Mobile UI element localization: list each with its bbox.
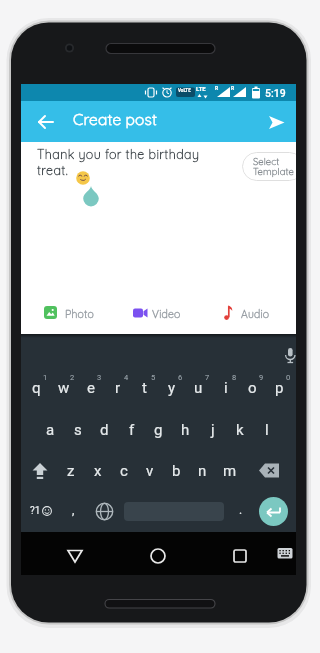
button[interactable]: q (23, 374, 50, 402)
button[interactable] (258, 462, 281, 480)
staticText: v (146, 462, 154, 480)
button[interactable]: z (57, 457, 84, 485)
staticText: LTE (196, 85, 206, 92)
button[interactable]: Video (128, 301, 188, 325)
staticText: a (46, 421, 55, 439)
staticText: R (215, 85, 219, 91)
staticText: 1 (43, 373, 48, 382)
button[interactable] (276, 544, 294, 562)
button[interactable]: Photo (39, 301, 105, 325)
button[interactable] (95, 502, 114, 521)
button[interactable]: n (189, 457, 216, 485)
button[interactable]: d (91, 416, 118, 444)
staticText: r (115, 379, 121, 397)
staticText: 5 (151, 373, 156, 382)
button[interactable]: k (226, 416, 253, 444)
staticText: 7 (205, 373, 210, 382)
staticText: 9 (259, 373, 264, 382)
staticText: 4 (124, 373, 129, 382)
staticText: 3 (97, 373, 102, 382)
staticText: Audio (241, 307, 270, 320)
staticText: ?1 (30, 505, 41, 517)
staticText: y (168, 379, 176, 397)
staticText: q (32, 379, 41, 397)
staticText: 2 (70, 373, 75, 382)
button[interactable]: h (172, 416, 199, 444)
button[interactable]: i (212, 374, 239, 402)
button[interactable] (259, 497, 288, 526)
button[interactable] (226, 541, 254, 569)
staticText: b (172, 462, 181, 480)
staticText: l (265, 421, 269, 439)
staticText: o (248, 379, 257, 397)
button[interactable]: x (84, 457, 111, 485)
button[interactable]: w (50, 374, 77, 402)
staticText: Photo (65, 307, 94, 320)
staticText: Select (253, 155, 280, 167)
staticText: 5:19 (265, 87, 286, 99)
staticText: Thank you for the birthday (37, 146, 200, 162)
staticText: 8 (232, 373, 237, 382)
button[interactable]: f (118, 416, 145, 444)
button[interactable]: u (185, 374, 212, 402)
staticText: p (275, 379, 284, 397)
button[interactable]: e (77, 374, 104, 402)
staticText: 6 (178, 373, 183, 382)
staticText: t (142, 379, 147, 397)
staticText: d (100, 421, 109, 439)
staticText: n (198, 462, 207, 480)
button[interactable]: j (199, 416, 226, 444)
staticText: Template (253, 165, 294, 177)
button[interactable]: . (227, 496, 254, 524)
button[interactable]: t (131, 374, 158, 402)
staticText: h (181, 421, 190, 439)
button[interactable]: v (136, 457, 163, 485)
button[interactable]: r (104, 374, 131, 402)
button[interactable]: , (60, 496, 87, 524)
button[interactable] (283, 347, 296, 365)
button[interactable]: o (239, 374, 266, 402)
button[interactable] (32, 108, 60, 136)
staticText: w (58, 379, 70, 397)
staticText: i (224, 379, 228, 397)
staticText: j (211, 421, 215, 439)
button[interactable]: p (266, 374, 293, 402)
button[interactable]: b (163, 457, 190, 485)
button[interactable]: s (64, 416, 91, 444)
staticText: , (72, 503, 75, 517)
staticText: . (239, 503, 243, 517)
staticText: R (231, 85, 235, 91)
staticText: z (67, 462, 75, 480)
button[interactable] (29, 461, 51, 481)
button[interactable]: c (110, 457, 137, 485)
button[interactable]: Audio (217, 301, 277, 325)
staticText: s (74, 421, 82, 439)
staticText: VoLTE (178, 88, 191, 93)
staticText: m (223, 462, 237, 480)
button[interactable]: ?1 (27, 501, 57, 521)
staticText: c (120, 462, 128, 480)
button[interactable] (262, 109, 290, 137)
button[interactable]: l (253, 416, 280, 444)
staticText: f (129, 421, 135, 439)
staticText: x (94, 462, 102, 480)
staticText: Create post (73, 109, 158, 128)
button[interactable]: a (37, 416, 64, 444)
staticText: g (154, 421, 163, 439)
button[interactable] (144, 541, 172, 569)
staticText: Video (152, 307, 181, 320)
button[interactable] (61, 541, 89, 569)
staticText: u (194, 379, 203, 397)
staticText: e (87, 379, 95, 397)
staticText: treat. (37, 162, 69, 178)
button[interactable]: y (158, 374, 185, 402)
button[interactable]: m (216, 457, 243, 485)
staticText: k (236, 421, 244, 439)
button[interactable]: g (145, 416, 172, 444)
button[interactable]: Select (242, 152, 296, 181)
staticText: 0 (286, 373, 291, 382)
